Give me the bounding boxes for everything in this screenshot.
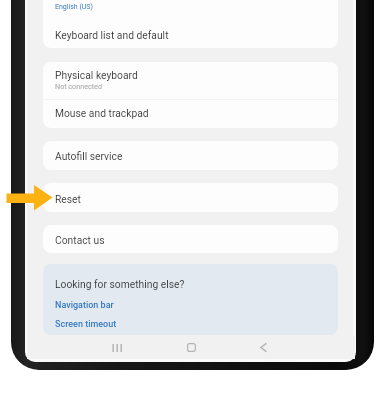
button[interactable]: English (US) xyxy=(43,0,338,20)
button[interactable]: Recent apps xyxy=(80,336,154,359)
staticText: Physical keyboard xyxy=(55,69,138,81)
button[interactable]: Keyboard list and default xyxy=(43,20,338,48)
staticText: Looking for something else? xyxy=(55,278,185,290)
staticText: Not connected xyxy=(55,82,102,90)
staticText: Navigation bar xyxy=(55,300,114,311)
staticText: Reset xyxy=(55,193,81,205)
staticText: Contact us xyxy=(55,234,105,246)
button[interactable]: Contact us xyxy=(43,225,338,253)
button[interactable]: Mouse and trackpad xyxy=(43,100,338,128)
button[interactable]: Back xyxy=(226,336,300,359)
button[interactable]: Physical keyboard xyxy=(43,62,338,96)
button[interactable]: Screen timeout xyxy=(51,317,121,332)
staticText: Mouse and trackpad xyxy=(55,107,149,119)
staticText: Autofill service xyxy=(55,150,123,162)
staticText: Keyboard list and default xyxy=(55,29,169,41)
button[interactable]: Home xyxy=(154,336,228,359)
staticText: Screen timeout xyxy=(55,319,117,330)
button[interactable]: Reset xyxy=(43,183,338,212)
button[interactable]: Autofill service xyxy=(43,141,338,170)
button[interactable]: Navigation bar xyxy=(51,298,118,313)
staticText: English (US) xyxy=(55,3,93,11)
